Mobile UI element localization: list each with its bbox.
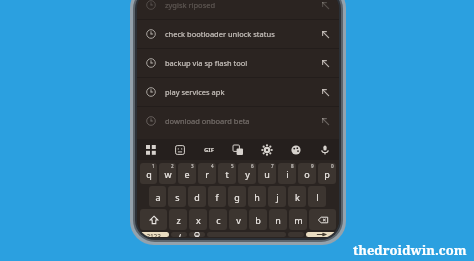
button[interactable]: w (159, 163, 176, 184)
staticText: r (205, 168, 209, 180)
button[interactable]: play services apk (137, 78, 339, 106)
staticText: check bootloader unlock status (165, 29, 321, 39)
button[interactable]: Shift (140, 209, 167, 230)
button[interactable]: zygisk riposed (137, 0, 339, 19)
button[interactable]: x (189, 209, 207, 230)
staticText: backup via sp flash tool (165, 58, 321, 68)
button[interactable]: download onboard beta (137, 107, 339, 135)
button[interactable]: Enter (306, 232, 336, 237)
button[interactable]: backup via sp flash tool (137, 49, 339, 77)
staticText: ?123 (147, 232, 162, 237)
button[interactable]: f (208, 186, 226, 207)
staticText: h (254, 191, 260, 203)
button[interactable]: h (248, 186, 266, 207)
staticText: l (316, 191, 319, 203)
staticText: z (176, 214, 181, 226)
button[interactable]: q (140, 163, 157, 184)
button[interactable]: a (149, 186, 166, 207)
button[interactable]: d (188, 186, 206, 207)
button[interactable]: l (308, 186, 326, 207)
staticText: a (155, 191, 161, 203)
staticText: n (275, 214, 281, 226)
staticText: 9 (311, 163, 314, 169)
button[interactable]: z (169, 209, 187, 230)
button[interactable]: ?123 (140, 232, 169, 237)
staticText: 0 (331, 163, 334, 169)
button[interactable]: Apps (137, 139, 165, 160)
button[interactable]: t (218, 163, 236, 184)
button[interactable]: . (288, 232, 304, 237)
button[interactable]: check bootloader unlock status (137, 20, 339, 48)
button[interactable]: k (288, 186, 306, 207)
button[interactable]: r (198, 163, 216, 184)
button[interactable]: y (238, 163, 256, 184)
button[interactable]: / (171, 232, 187, 237)
staticText: u (264, 168, 270, 180)
staticText: 1 (152, 163, 155, 169)
staticText: / (178, 232, 181, 237)
button[interactable]: Backspace (309, 209, 336, 230)
staticText: 2 (171, 163, 174, 169)
button[interactable]: Translate (223, 139, 252, 160)
staticText: q (146, 168, 152, 180)
staticText: 8 (291, 163, 294, 169)
staticText: download onboard beta (165, 116, 321, 126)
staticText: GIF (204, 146, 214, 154)
button[interactable]: v (229, 209, 247, 230)
button[interactable]: n (269, 209, 287, 230)
staticText: 4 (211, 163, 214, 169)
button[interactable]: e (178, 163, 196, 184)
staticText: f (215, 191, 219, 203)
staticText: thedroidwin.com (353, 241, 467, 259)
staticText: w (164, 168, 172, 180)
staticText: x (196, 214, 201, 226)
button[interactable]: s (168, 186, 186, 207)
button[interactable]: p (318, 163, 336, 184)
staticText: s (175, 191, 180, 203)
button[interactable]: b (249, 209, 267, 230)
staticText: 3 (191, 163, 194, 169)
button[interactable]: c (209, 209, 227, 230)
button[interactable]: i (278, 163, 296, 184)
staticText: b (255, 214, 261, 226)
staticText: zygisk riposed (165, 0, 321, 10)
staticText: 5 (231, 163, 234, 169)
button[interactable]: m (289, 209, 307, 230)
staticText: 7 (271, 163, 274, 169)
button[interactable]: Settings (252, 139, 281, 160)
button[interactable]: o (298, 163, 316, 184)
staticText: j (276, 191, 279, 203)
button[interactable]: GIF (194, 139, 223, 160)
staticText: play services apk (165, 87, 321, 97)
staticText: e (184, 168, 190, 180)
staticText: o (304, 168, 310, 180)
button[interactable]: Emoji (189, 232, 205, 237)
staticText: v (236, 214, 241, 226)
button[interactable]: Theme (281, 139, 310, 160)
staticText: y (245, 168, 250, 180)
staticText: i (286, 168, 289, 180)
staticText: g (234, 191, 240, 203)
staticText: c (216, 214, 221, 226)
staticText: 6 (251, 163, 254, 169)
button[interactable]: u (258, 163, 276, 184)
staticText: d (194, 191, 200, 203)
button[interactable]: j (268, 186, 286, 207)
button[interactable]: Stickers (165, 139, 194, 160)
staticText: t (225, 168, 229, 180)
button[interactable]: Voice input (310, 139, 339, 160)
button[interactable]: g (228, 186, 246, 207)
staticText: m (294, 214, 303, 226)
staticText: p (324, 168, 330, 180)
staticText: k (295, 191, 300, 203)
